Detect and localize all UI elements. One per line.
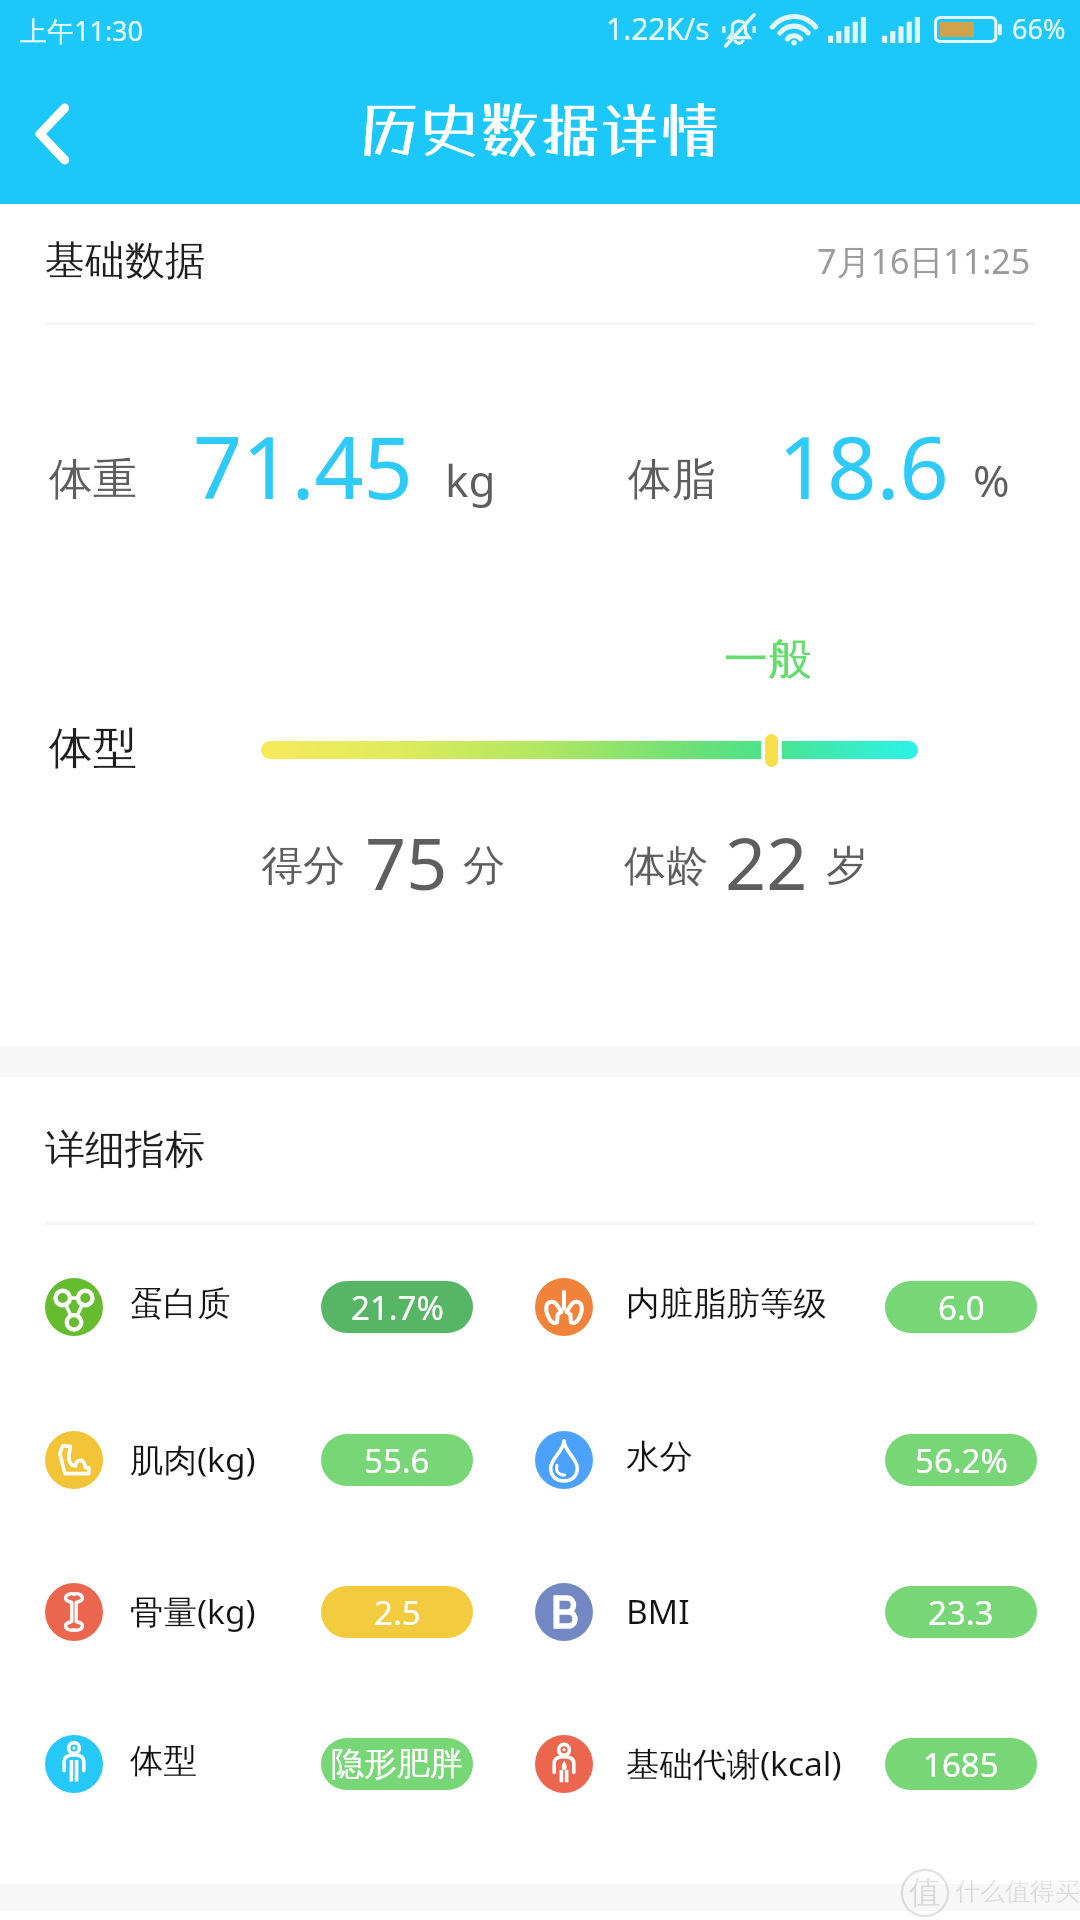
staticText: 66% [1012,10,1066,47]
button[interactable]: 水分 [523,1416,1049,1504]
staticText: 75 [365,813,448,911]
button[interactable]: 基础代谢(kcal) [523,1720,1049,1808]
staticText: % [973,450,1010,510]
button[interactable]: 返回 [0,82,104,186]
staticText: 基础数据 [45,235,205,285]
staticText: 历史数据详情 [360,94,720,165]
staticText: 内脏脂肪等级 [626,1283,827,1325]
staticText: 蛋白质 [130,1283,231,1325]
staticText: 骨量(kg) [130,1588,256,1634]
staticText: 水分 [626,1436,693,1478]
staticText: 什么值得买 [955,1876,1080,1907]
staticText: 一般 [724,632,812,687]
staticText: kg [445,450,496,510]
staticText: 体龄 [624,840,708,893]
staticText: 21.7% [351,1285,444,1330]
staticText: 基础代谢(kcal) [626,1740,842,1786]
staticText: 上午11:30 [20,12,144,49]
staticText: 6.0 [938,1285,985,1330]
staticText: 岁 [826,840,868,893]
button[interactable]: 蛋白质 [33,1263,485,1351]
staticText: 56.2% [915,1438,1008,1483]
button[interactable]: 骨量(kg) [33,1568,485,1656]
staticText: 隐形肥胖 [331,1743,463,1785]
staticText: 值 [909,1872,941,1912]
staticText: 23.3 [928,1590,994,1635]
staticText: 分 [463,840,505,893]
staticText: 18.6 [778,407,949,524]
button[interactable]: 肌肉(kg) [33,1416,485,1504]
staticText: 1685 [923,1742,999,1787]
staticText: 2.5 [374,1590,421,1635]
staticText: 肌肉(kg) [130,1436,256,1482]
button[interactable]: BMI [523,1568,1049,1656]
staticText: 22 [725,813,808,911]
staticText: 得分 [261,840,345,893]
staticText: 7月16日11:25 [817,238,1031,284]
staticText: 体型 [130,1740,197,1782]
staticText: 详细指标 [45,1124,205,1174]
staticText: 71.45 [193,407,413,524]
button[interactable]: 体型 [33,1720,485,1808]
staticText: 55.6 [364,1438,430,1483]
button[interactable]: 内脏脂肪等级 [523,1263,1049,1351]
staticText: 体脂 [628,452,716,507]
staticText: 体型 [49,721,137,776]
staticText: 体重 [49,452,137,507]
staticText: 1.22K/s [606,8,710,49]
staticText: BMI [626,1588,690,1634]
